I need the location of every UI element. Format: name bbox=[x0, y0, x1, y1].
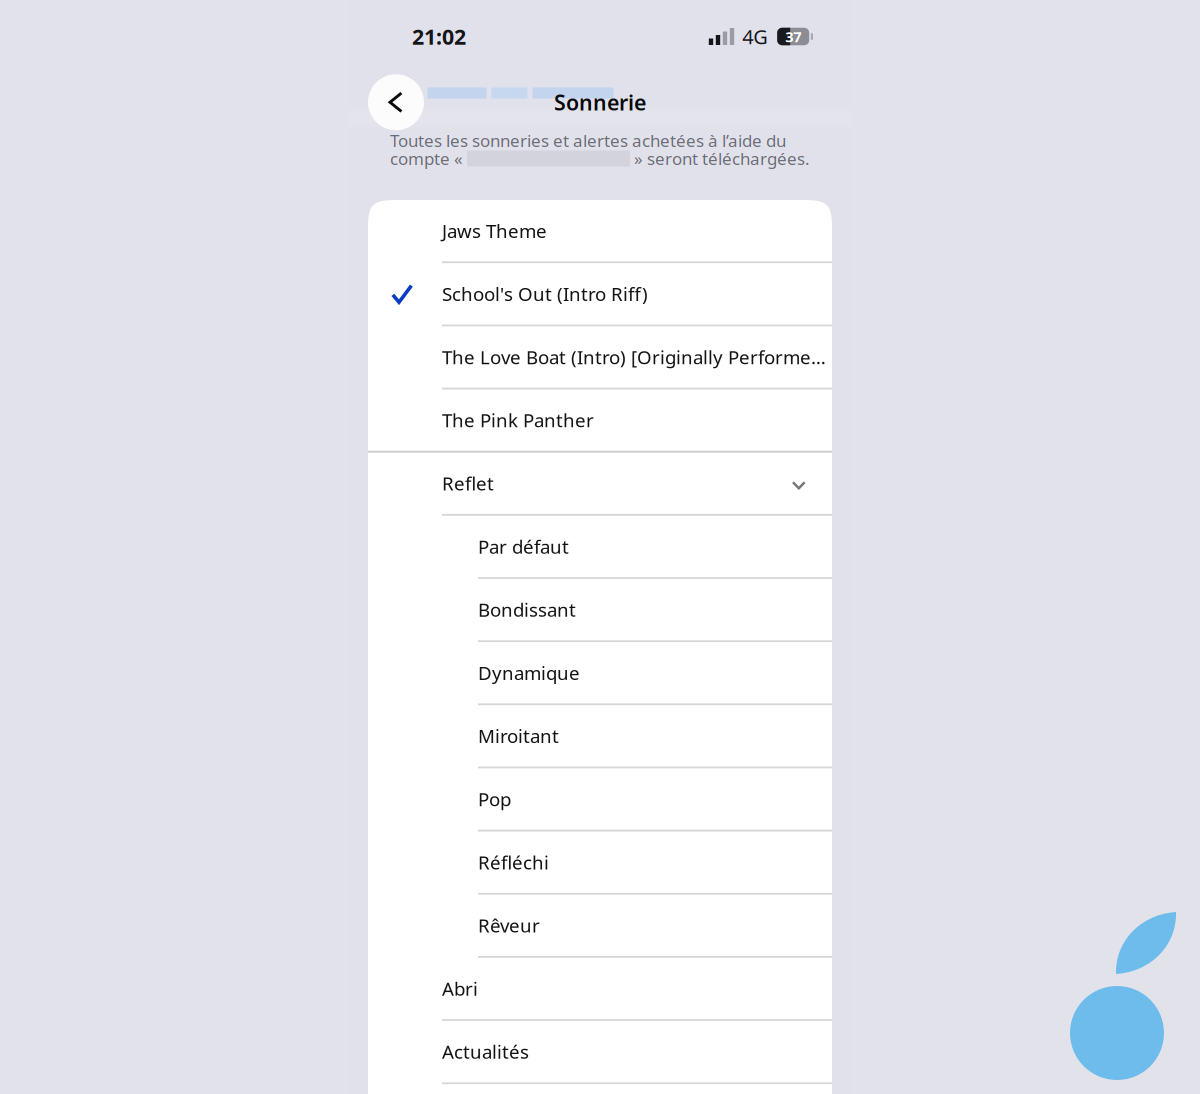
button[interactable]: Reflet bbox=[368, 453, 832, 516]
staticText: Miroitant bbox=[478, 723, 559, 749]
staticText: The Pink Panther bbox=[442, 407, 594, 433]
staticText: 37 bbox=[785, 26, 801, 46]
staticText: Abri bbox=[442, 976, 478, 1001]
staticText: Dynamique bbox=[478, 660, 580, 685]
staticText: Rêveur bbox=[478, 913, 540, 938]
button[interactable]: Pop bbox=[368, 768, 832, 831]
staticText: compte « bbox=[390, 147, 463, 170]
staticText: Réfléchi bbox=[478, 849, 549, 875]
staticText: Sonnerie bbox=[554, 88, 646, 117]
button[interactable]: Actualités bbox=[368, 1021, 832, 1084]
staticText: School's Out (Intro Riff) bbox=[442, 281, 648, 306]
staticText: Par défaut bbox=[478, 534, 569, 559]
staticText: 21:02 bbox=[412, 22, 466, 51]
button[interactable]: Réfléchi bbox=[368, 831, 832, 895]
button[interactable]: Rêveur bbox=[368, 895, 832, 958]
staticText: Actualités bbox=[442, 1039, 529, 1064]
staticText: 4G bbox=[742, 23, 768, 50]
staticText: Toutes les sonneries et alertes achetées… bbox=[390, 129, 786, 152]
button[interactable]: Dynamique bbox=[368, 642, 832, 705]
button[interactable]: Abri bbox=[368, 958, 832, 1021]
button[interactable]: School's Out (Intro Riff) bbox=[368, 263, 832, 326]
staticText: » seront téléchargées. bbox=[634, 147, 810, 170]
staticText: Bondissant bbox=[478, 597, 576, 622]
staticText: Pop bbox=[478, 786, 511, 812]
button[interactable]: Jaws Theme bbox=[368, 200, 832, 263]
staticText: Jaws Theme bbox=[442, 218, 547, 243]
button[interactable]: Par défaut bbox=[368, 516, 832, 579]
staticText: Reflet bbox=[442, 471, 494, 496]
button[interactable]: Miroitant bbox=[368, 705, 832, 768]
button[interactable]: The Love Boat (Intro) [Originally Perfor… bbox=[368, 326, 832, 389]
staticText: The Love Boat (Intro) [Originally Perfor… bbox=[442, 344, 826, 370]
button[interactable]: Back bbox=[368, 74, 424, 130]
button[interactable]: The Pink Panther bbox=[368, 389, 832, 453]
button[interactable]: Bondissant bbox=[368, 579, 832, 642]
